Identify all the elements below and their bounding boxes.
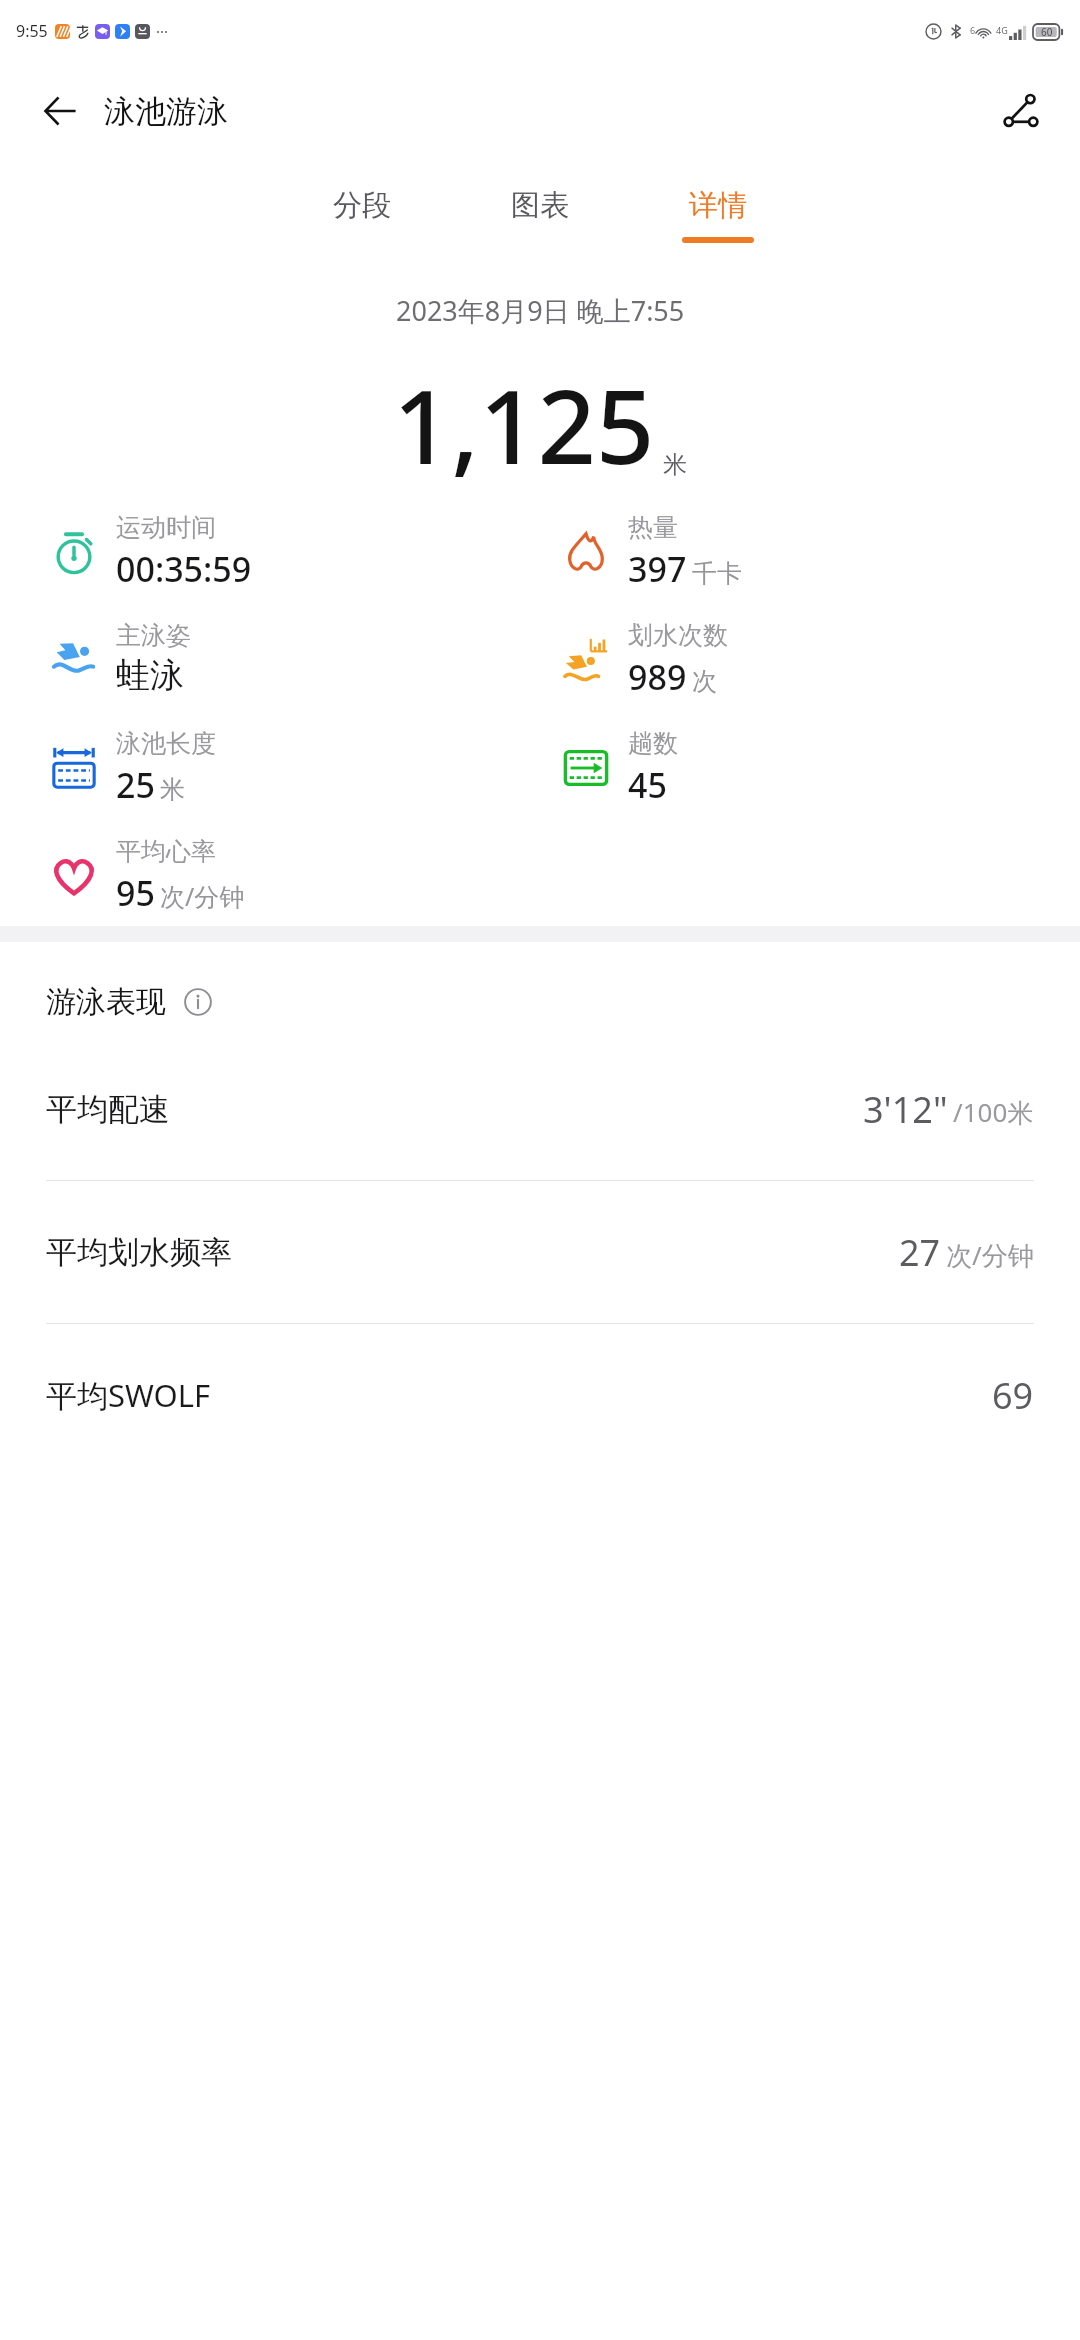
- staticText: 泳池游泳: [104, 92, 228, 131]
- button[interactable]: 泳池长度: [46, 728, 216, 808]
- staticText: 9:55: [16, 20, 48, 42]
- staticText: 3'12": [863, 1085, 948, 1134]
- staticText: 热量: [628, 512, 678, 543]
- staticText: 运动时间: [116, 512, 216, 543]
- staticText: 次/分钟: [946, 1237, 1034, 1273]
- staticText: 次: [692, 666, 717, 697]
- button[interactable]: Back: [34, 86, 84, 136]
- staticText: 6: [970, 24, 976, 36]
- button[interactable]: 主泳姿: [46, 620, 191, 697]
- staticText: 千卡: [692, 558, 742, 589]
- staticText: 平均划水频率: [46, 1233, 232, 1272]
- staticText: 次/分钟: [160, 879, 245, 913]
- staticText: 00:35:59: [116, 546, 252, 592]
- staticText: 2023年8月9日 晚上7:55: [396, 292, 685, 329]
- button[interactable]: 划水次数: [558, 620, 728, 700]
- button[interactable]: Share: [994, 84, 1048, 138]
- staticText: 397: [628, 546, 687, 592]
- staticText: 45: [628, 762, 667, 808]
- button[interactable]: 热量: [558, 512, 742, 592]
- staticText: 989: [628, 654, 687, 700]
- button[interactable]: 运动时间: [46, 512, 252, 592]
- staticText: 4G: [996, 24, 1008, 36]
- staticText: 27: [899, 1228, 941, 1277]
- staticText: 划水次数: [628, 620, 728, 651]
- staticText: 60: [1041, 25, 1053, 39]
- staticText: 米: [663, 450, 687, 480]
- staticText: 平均心率: [116, 836, 216, 867]
- staticText: 69: [992, 1371, 1034, 1420]
- button[interactable]: 平均划水频率: [0, 1181, 1080, 1324]
- staticText: /100米: [953, 1094, 1034, 1130]
- staticText: 蛙泳: [116, 654, 184, 697]
- staticText: 详情: [689, 187, 747, 224]
- button[interactable]: 详情: [629, 179, 807, 251]
- staticText: 泳池长度: [116, 728, 216, 759]
- button[interactable]: 分段: [273, 179, 451, 251]
- staticText: 米: [160, 774, 185, 805]
- staticText: 游泳表现: [46, 983, 166, 1021]
- staticText: 主泳姿: [116, 620, 191, 651]
- button[interactable]: 平均SWOLF: [0, 1324, 1080, 1466]
- staticText: 95: [116, 870, 155, 916]
- button[interactable]: 图表: [451, 179, 629, 251]
- staticText: ···: [156, 21, 169, 41]
- button[interactable]: 平均配速: [0, 1038, 1080, 1181]
- staticText: 图表: [511, 187, 569, 224]
- button[interactable]: Info: [178, 982, 218, 1022]
- button[interactable]: 平均心率: [46, 836, 245, 916]
- button[interactable]: 趟数: [558, 728, 678, 808]
- staticText: 25: [116, 762, 155, 808]
- staticText: 平均SWOLF: [46, 1374, 211, 1416]
- staticText: 平均配速: [46, 1090, 170, 1129]
- staticText: 趟数: [628, 728, 678, 759]
- staticText: 分段: [333, 187, 391, 224]
- staticText: 1,125: [393, 355, 655, 494]
